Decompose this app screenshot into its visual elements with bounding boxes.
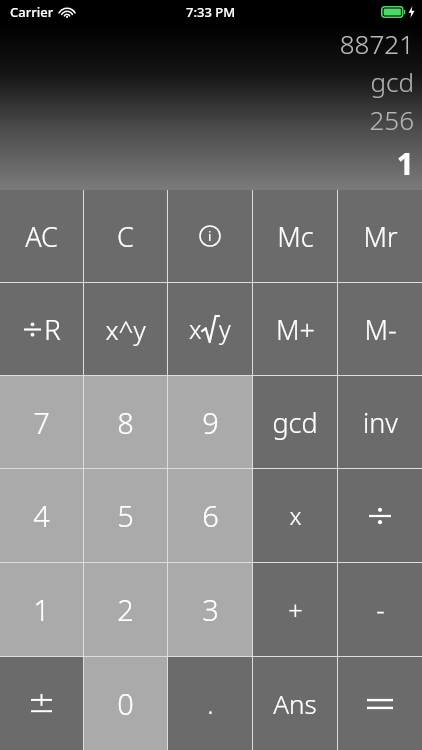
button[interactable]: Power	[84, 283, 167, 375]
button[interactable]: Divide remainder	[0, 283, 83, 375]
staticText: y	[219, 312, 231, 346]
staticText: 7:33 PM	[186, 3, 236, 21]
button[interactable]: Memory clear	[253, 190, 337, 282]
staticText: Ans	[273, 686, 317, 721]
staticText: C	[117, 218, 134, 255]
button[interactable]: Info	[168, 190, 252, 282]
button[interactable]: Zero	[84, 657, 167, 750]
staticText: inv	[363, 404, 398, 441]
button[interactable]: Divide	[338, 469, 422, 562]
staticText: 1	[396, 143, 414, 184]
button[interactable]: Answer	[253, 657, 337, 750]
button[interactable]: Minus	[338, 563, 422, 656]
staticText: 88721	[339, 26, 414, 61]
button[interactable]: Two	[84, 563, 167, 656]
button[interactable]: Plus minus sign	[0, 657, 83, 750]
staticText: M+	[276, 311, 315, 348]
staticText: 4	[33, 496, 50, 535]
button[interactable]: Seven	[0, 376, 83, 468]
staticText: gcd	[272, 404, 318, 441]
staticText: x	[189, 312, 202, 346]
staticText: Mr	[363, 218, 398, 255]
staticText: .	[207, 686, 214, 721]
staticText: M-	[364, 311, 397, 348]
button[interactable]: Nine	[168, 376, 252, 468]
button[interactable]: Five	[84, 469, 167, 562]
button[interactable]: Inverse	[338, 376, 422, 468]
staticText: i	[208, 227, 212, 245]
staticText: -	[376, 592, 385, 627]
staticText: gcd	[370, 64, 414, 99]
staticText: x^y	[105, 312, 146, 347]
button[interactable]: All clear	[0, 190, 83, 282]
staticText: 2	[117, 590, 134, 629]
staticText: +	[288, 592, 303, 627]
staticText: x	[289, 499, 302, 532]
button[interactable]: Memory recall	[338, 190, 422, 282]
staticText: 5	[117, 496, 134, 535]
button[interactable]: Four	[0, 469, 83, 562]
staticText: AC	[25, 218, 58, 255]
staticText: 9	[202, 403, 219, 442]
staticText: 0	[117, 684, 134, 723]
staticText: 1	[33, 590, 50, 629]
staticText: Mc	[277, 218, 314, 255]
staticText: 256	[369, 102, 414, 137]
button[interactable]: One	[0, 563, 83, 656]
staticText: 6	[202, 496, 219, 535]
button[interactable]: Greatest common divisor	[253, 376, 337, 468]
staticText: R	[44, 310, 61, 348]
staticText: 3	[202, 590, 219, 629]
button[interactable]: Root	[168, 283, 252, 375]
button[interactable]: Multiply	[253, 469, 337, 562]
button[interactable]: Plus	[253, 563, 337, 656]
button[interactable]: Equals	[338, 657, 422, 750]
staticText: 8	[117, 403, 134, 442]
button[interactable]: Decimal point	[168, 657, 252, 750]
button[interactable]: Eight	[84, 376, 167, 468]
button[interactable]: Six	[168, 469, 252, 562]
button[interactable]: Three	[168, 563, 252, 656]
staticText: Carrier	[10, 3, 54, 21]
button[interactable]: Memory subtract	[338, 283, 422, 375]
button[interactable]: Memory add	[253, 283, 337, 375]
staticText: 7	[33, 403, 50, 442]
button[interactable]: Clear	[84, 190, 167, 282]
